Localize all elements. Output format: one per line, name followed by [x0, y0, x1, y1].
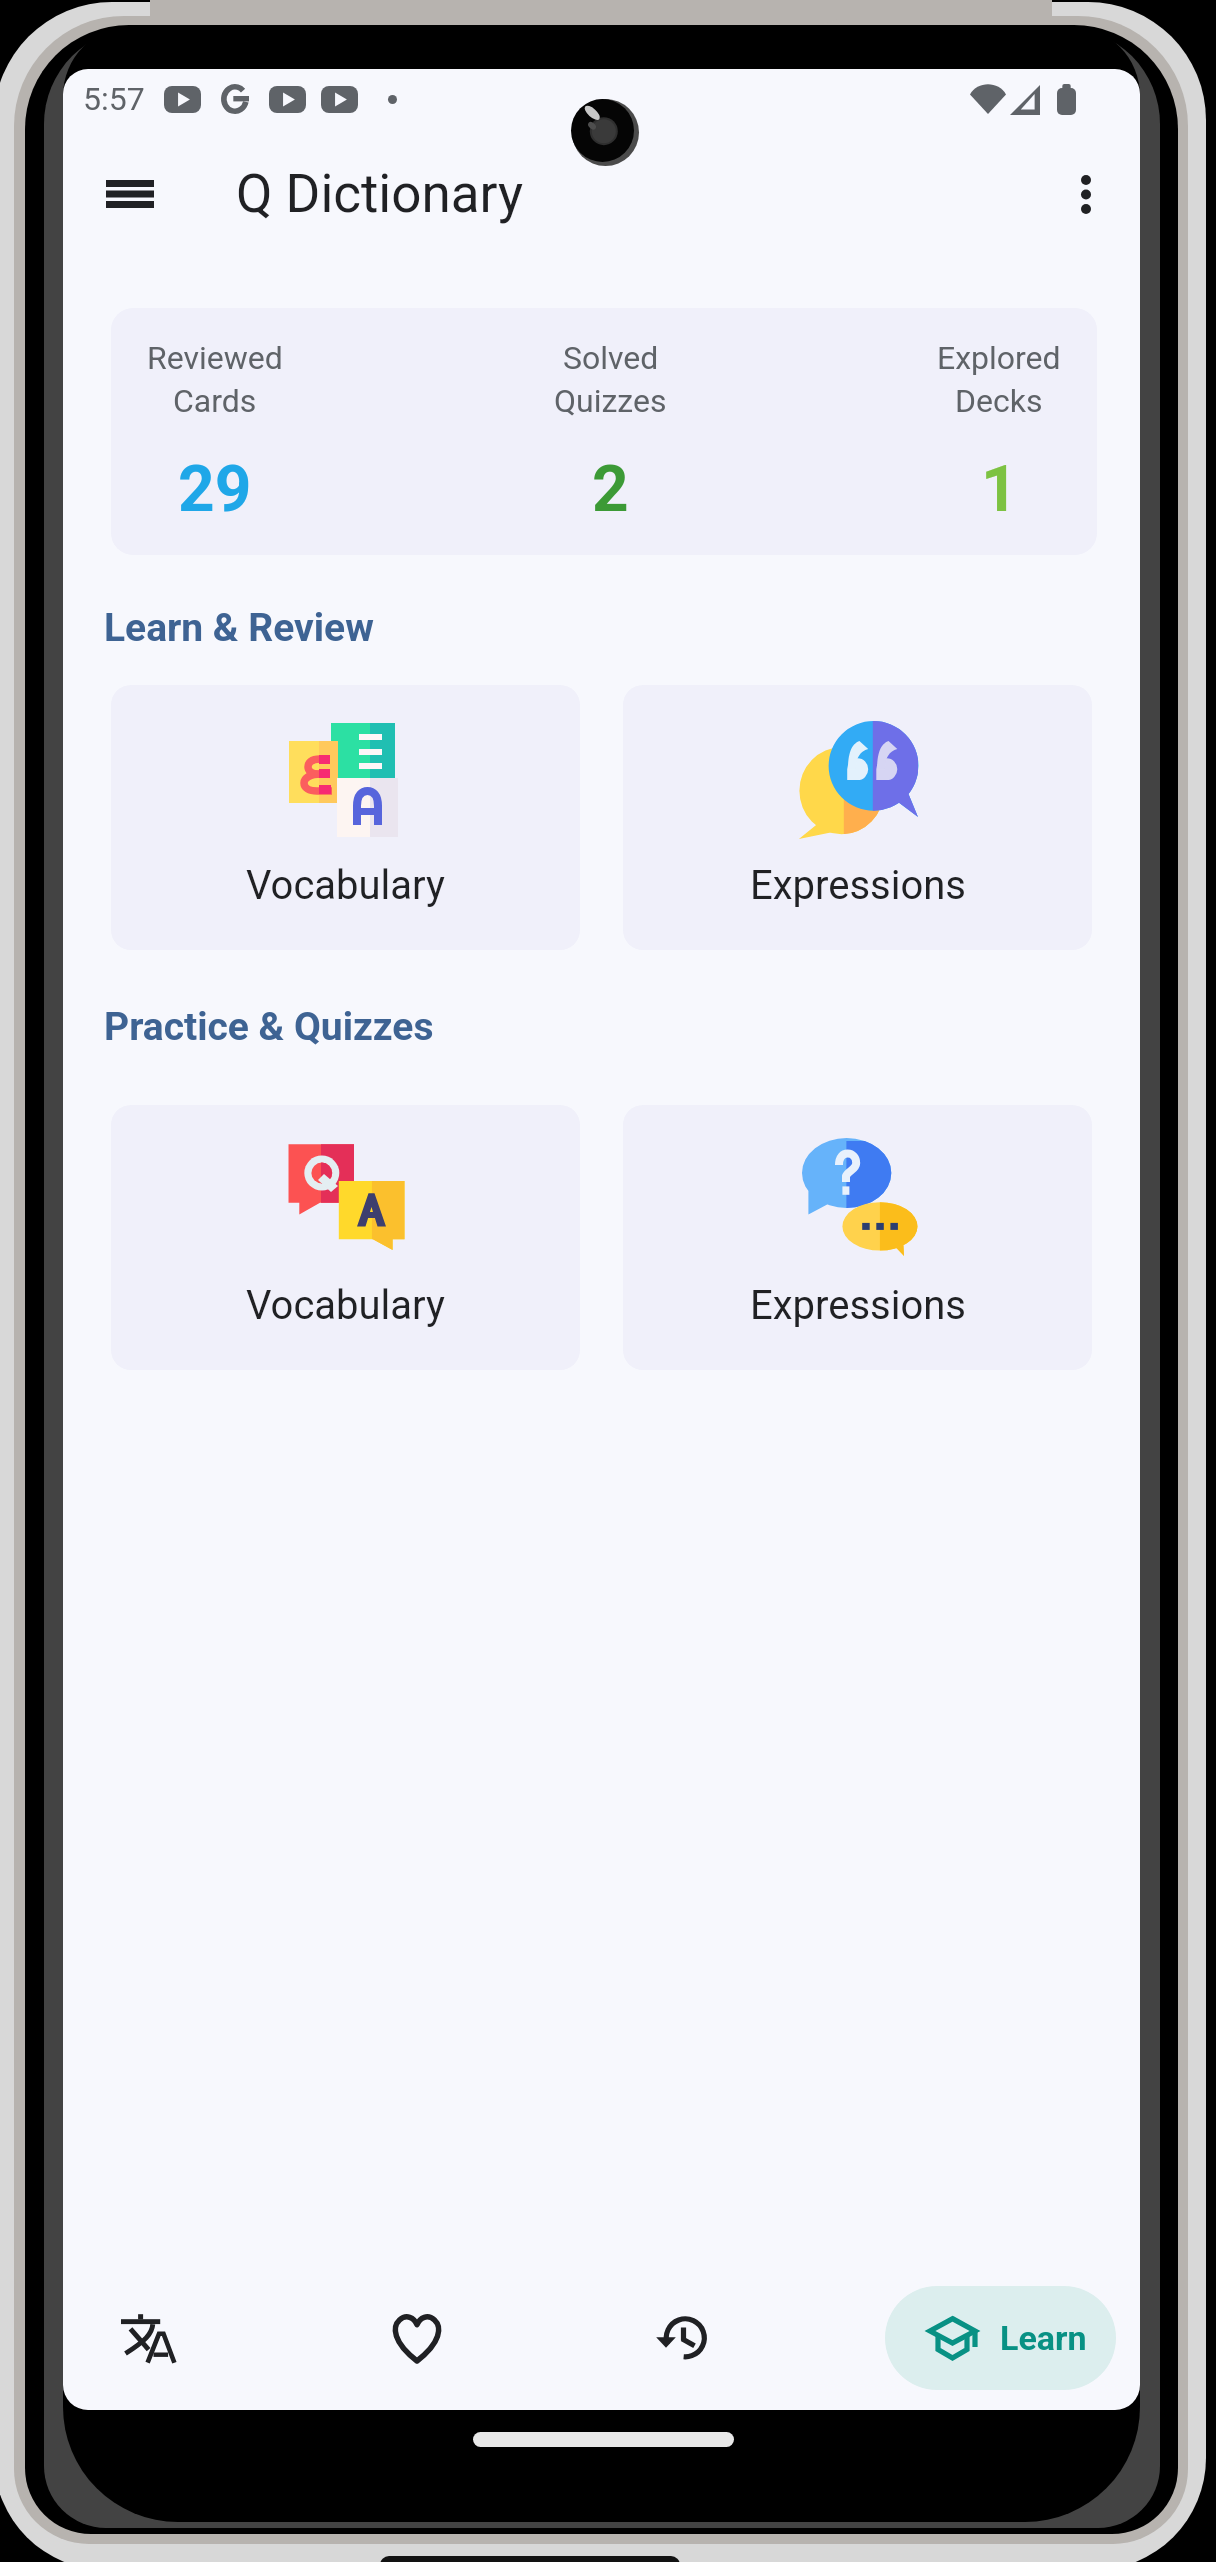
- staticText: Solved: [563, 339, 659, 377]
- button[interactable]: Menu: [86, 150, 174, 238]
- staticText: 2: [592, 452, 629, 527]
- staticText: Reviewed: [147, 339, 283, 377]
- button[interactable]: Translate: [98, 2286, 202, 2390]
- staticText: Practice & Quizzes: [104, 1004, 434, 1050]
- button[interactable]: Favorites: [365, 2286, 469, 2390]
- button[interactable]: More options: [1042, 150, 1130, 238]
- staticText: Expressions: [750, 862, 966, 909]
- staticText: Learn: [1000, 2318, 1087, 2358]
- staticText: 1: [981, 452, 1018, 527]
- staticText: 5:57: [83, 80, 145, 118]
- staticText: Expressions: [750, 1282, 966, 1329]
- button[interactable]: Vocabulary: [111, 685, 580, 950]
- staticText: Cards: [173, 382, 257, 420]
- button[interactable]: Reviewed: [111, 308, 1097, 555]
- button[interactable]: History: [631, 2286, 735, 2390]
- staticText: Q Dictionary: [236, 163, 524, 225]
- staticText: Learn & Review: [104, 605, 374, 651]
- button[interactable]: Learn: [885, 2286, 1116, 2390]
- staticText: Vocabulary: [246, 862, 445, 909]
- staticText: Quizzes: [554, 382, 667, 420]
- staticText: Decks: [955, 382, 1043, 420]
- staticText: Explored: [937, 339, 1061, 377]
- button[interactable]: Expressions: [623, 1105, 1092, 1370]
- staticText: 29: [178, 452, 252, 527]
- button[interactable]: Expressions: [623, 685, 1092, 950]
- staticText: Vocabulary: [246, 1282, 445, 1329]
- button[interactable]: Vocabulary: [111, 1105, 580, 1370]
